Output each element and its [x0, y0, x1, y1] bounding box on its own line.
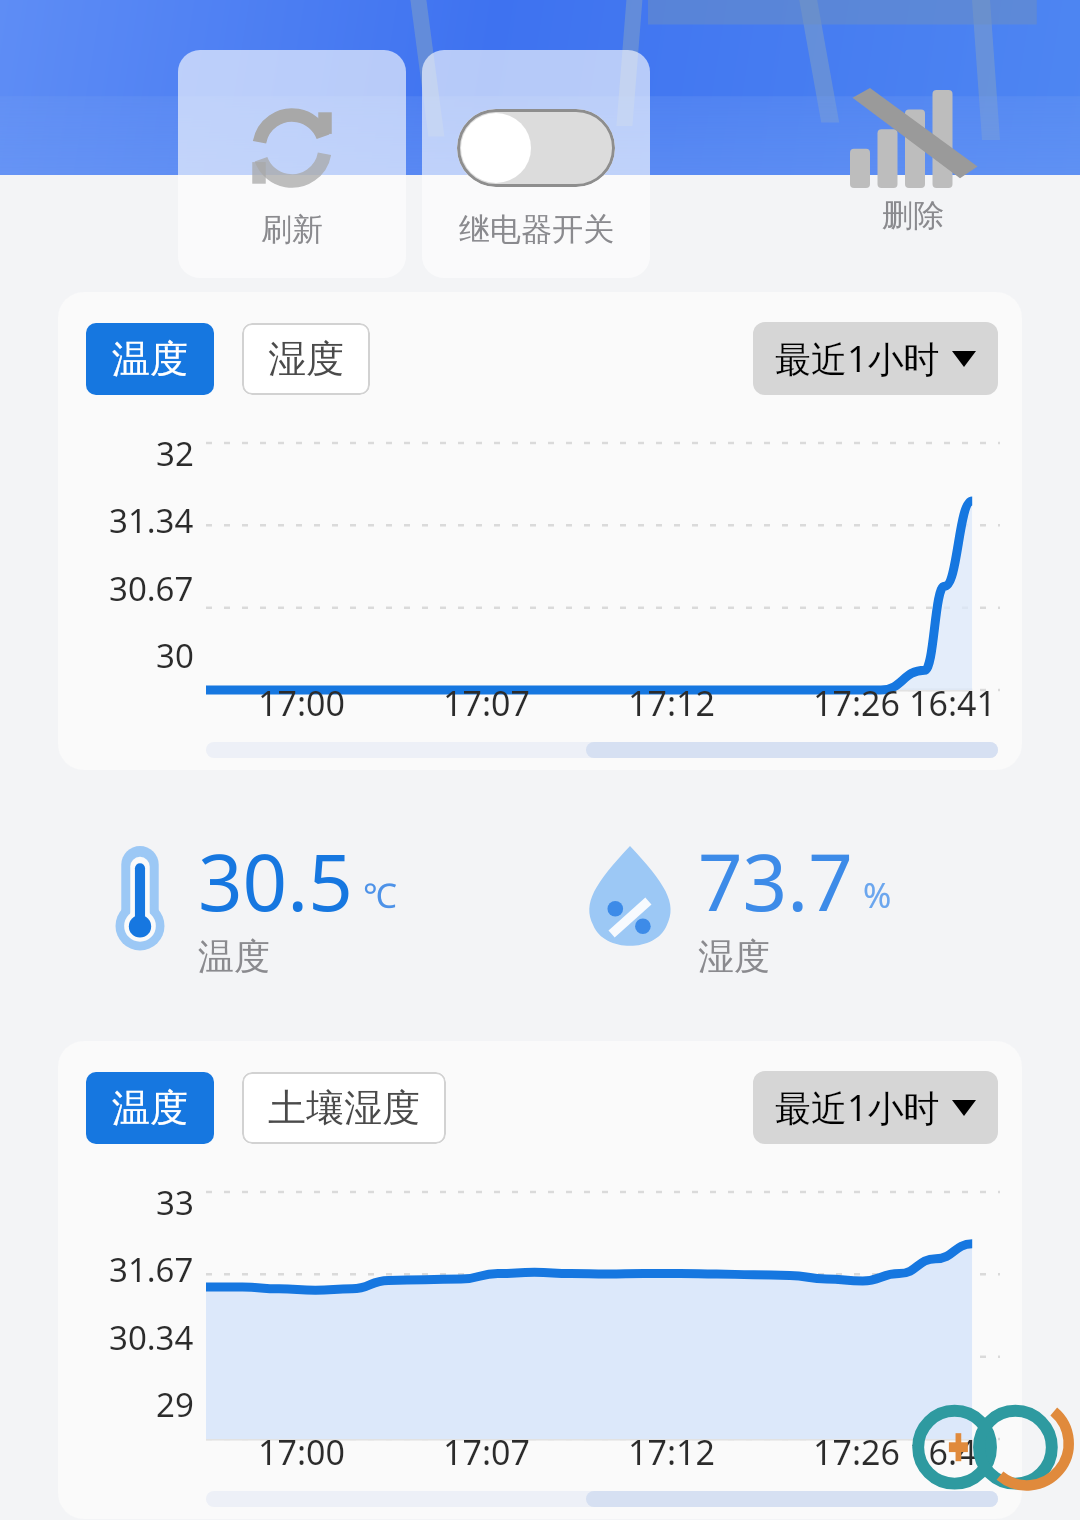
- staticText: 刷新: [261, 210, 323, 249]
- button[interactable]: 最近1小时: [753, 1071, 998, 1144]
- button[interactable]: 温度: [86, 323, 214, 395]
- staticText: 土壤湿度: [268, 1084, 420, 1132]
- button[interactable]: 73.7: [540, 828, 1020, 979]
- staticText: 33: [156, 1180, 194, 1225]
- staticText: 继电器开关: [459, 210, 614, 249]
- staticText: 31.67: [109, 1247, 194, 1292]
- staticText: 30: [156, 633, 194, 678]
- staticText: 17:26: [813, 1429, 998, 1475]
- staticText: 17:00: [258, 1429, 443, 1475]
- staticText: 73.7: [698, 828, 853, 934]
- button[interactable]: 30.5: [60, 828, 540, 979]
- staticText: 17:12: [628, 1429, 813, 1475]
- button[interactable]: 刷新: [178, 50, 406, 278]
- button[interactable]: 温度: [86, 1072, 214, 1144]
- staticText: 删除: [882, 196, 944, 235]
- button[interactable]: 删除: [820, 90, 1005, 235]
- staticText: 16:41: [909, 680, 996, 726]
- staticText: 31.34: [109, 498, 194, 543]
- staticText: 湿度: [268, 335, 344, 383]
- button[interactable]: 继电器开关: [422, 50, 650, 278]
- staticText: 29: [156, 1382, 194, 1427]
- staticText: 30.5: [198, 828, 353, 934]
- staticText: ℃: [363, 872, 397, 918]
- staticText: 温度: [198, 934, 270, 979]
- staticText: 17:07: [443, 680, 628, 726]
- staticText: 17:07: [443, 1429, 628, 1475]
- staticText: 30.67: [109, 566, 194, 611]
- staticText: 17:00: [258, 680, 443, 726]
- staticText: 17:26: [813, 680, 998, 726]
- staticText: 32: [156, 431, 194, 476]
- button[interactable]: 土壤湿度: [242, 1072, 446, 1144]
- button[interactable]: 最近1小时: [753, 322, 998, 395]
- staticText: 最近1小时: [775, 334, 940, 383]
- staticText: 温度: [112, 335, 188, 383]
- button[interactable]: 湿度: [242, 323, 370, 395]
- staticText: 17:12: [628, 680, 813, 726]
- staticText: 最近1小时: [775, 1083, 940, 1132]
- staticText: 湿度: [698, 934, 770, 979]
- staticText: 温度: [112, 1084, 188, 1132]
- staticText: %: [863, 872, 892, 918]
- staticText: 30.34: [109, 1315, 194, 1360]
- staticText: 16:41: [909, 1429, 996, 1475]
